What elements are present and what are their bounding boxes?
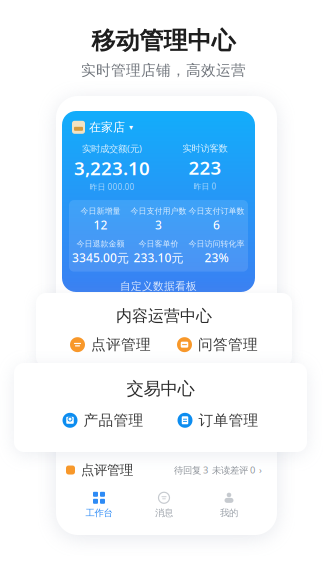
staticText: 3	[155, 217, 162, 233]
staticText: 昨日 000.00	[89, 181, 134, 192]
button[interactable]: 订单管理	[177, 411, 258, 429]
staticText: 我的	[220, 507, 238, 519]
button[interactable]: 工作台	[66, 490, 131, 520]
staticText: 实时成交额(元)	[82, 142, 142, 155]
staticText: 3345.00元	[72, 250, 129, 266]
staticText: 工作台	[85, 507, 112, 519]
staticText: 今日新增量	[80, 206, 120, 216]
button[interactable]: 自定义数据看板	[120, 272, 197, 293]
staticText: ▾	[129, 123, 133, 132]
staticText: 待回复 3 未读差评 0 ›	[174, 464, 262, 476]
button[interactable]: 点评管理	[70, 336, 151, 354]
staticText: 移动管理中心	[91, 26, 235, 55]
staticText: 点评管理	[91, 336, 151, 354]
staticText: 23%	[204, 250, 228, 266]
staticText: 223	[188, 155, 221, 180]
staticText: 233.10元	[133, 250, 183, 266]
staticText: 昨日 0	[193, 181, 216, 192]
staticText: 3,223.10	[74, 156, 150, 180]
staticText: 消息	[155, 507, 173, 519]
staticText: 问答管理	[198, 336, 258, 354]
button[interactable]: 在家店	[72, 120, 245, 134]
staticText: 自定义数据看板	[120, 280, 197, 293]
button[interactable]: 消息	[131, 490, 196, 520]
staticText: 6	[213, 217, 220, 233]
staticText: 内容运营中心	[116, 306, 212, 326]
staticText: 实时访客数	[182, 143, 227, 154]
button[interactable]: 点评管理	[66, 461, 262, 479]
staticText: 今日客单价	[138, 239, 178, 249]
staticText: 今日退款金额	[76, 239, 124, 249]
staticText: 今日访问转化率	[188, 239, 244, 249]
staticText: 今日支付用户数	[130, 206, 186, 216]
button[interactable]: 我的	[196, 490, 261, 520]
staticText: 交易中心	[126, 378, 194, 399]
staticText: 产品管理	[83, 411, 143, 429]
staticText: 12	[93, 217, 107, 233]
staticText: 实时管理店铺，高效运营	[81, 61, 246, 79]
button[interactable]: 产品管理	[62, 411, 143, 429]
button[interactable]: 问答管理	[177, 336, 258, 354]
staticText: 订单管理	[198, 411, 258, 429]
staticText: 点评管理	[81, 462, 133, 478]
staticText: 今日支付订单数	[188, 206, 244, 216]
staticText: 在家店	[89, 120, 125, 135]
